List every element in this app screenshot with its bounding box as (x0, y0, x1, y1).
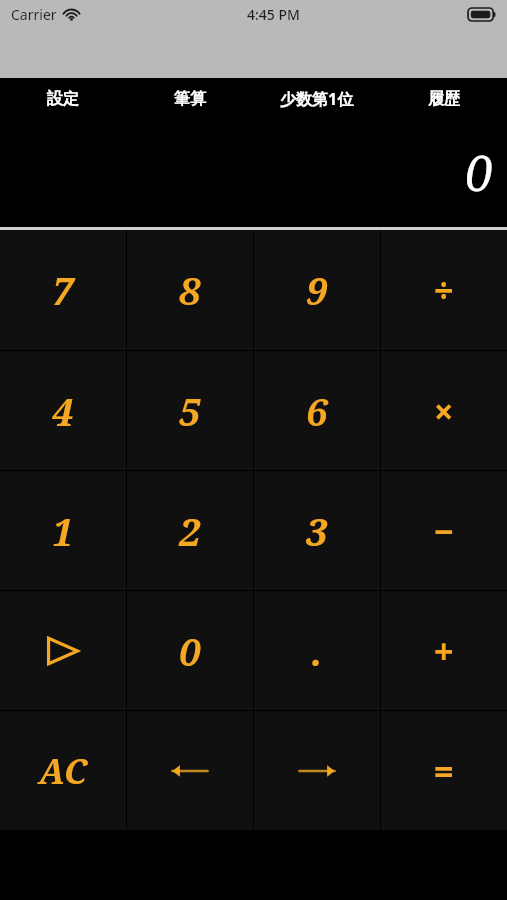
button[interactable]: Forward (254, 711, 380, 830)
staticText: + (434, 628, 454, 674)
button[interactable]: Backward (127, 711, 253, 830)
staticText: 少数第1位 (280, 88, 354, 110)
button[interactable]: + (381, 591, 507, 710)
button[interactable]: Play (0, 591, 126, 710)
staticText: 1 (52, 505, 74, 557)
staticText: 2 (179, 505, 201, 557)
staticText: × (434, 388, 454, 434)
button[interactable]: 筆算 (126, 78, 253, 120)
staticText: 0 (465, 138, 493, 206)
button[interactable]: AC (0, 711, 126, 830)
button[interactable]: 少数第1位 (253, 78, 380, 120)
button[interactable]: 5 (127, 351, 253, 470)
button[interactable]: 6 (254, 351, 380, 470)
button[interactable]: 7 (0, 230, 126, 350)
button[interactable]: × (381, 351, 507, 470)
staticText: = (434, 748, 454, 794)
button[interactable]: ÷ (381, 230, 507, 350)
button[interactable]: . (254, 591, 380, 710)
staticText: . (311, 625, 323, 677)
staticText: 7 (52, 264, 74, 316)
staticText: 設定 (47, 89, 79, 109)
staticText: AC (39, 748, 87, 794)
button[interactable]: 3 (254, 471, 380, 590)
button[interactable]: 8 (127, 230, 253, 350)
staticText: 8 (179, 264, 201, 316)
button[interactable]: 1 (0, 471, 126, 590)
staticText: 4 (52, 385, 74, 437)
staticText: − (434, 508, 454, 554)
button[interactable]: = (381, 711, 507, 830)
staticText: 5 (179, 385, 201, 437)
staticText: 3 (306, 505, 328, 557)
staticText: 筆算 (174, 89, 206, 109)
button[interactable]: 設定 (0, 78, 126, 120)
button[interactable]: 4 (0, 351, 126, 470)
staticText: ÷ (434, 267, 454, 313)
staticText: 4:45 PM (247, 5, 300, 24)
staticText: Carrier (11, 5, 57, 24)
button[interactable]: 0 (127, 591, 253, 710)
staticText: 6 (306, 385, 328, 437)
button[interactable]: 履歴 (380, 78, 507, 120)
staticText: 9 (306, 264, 328, 316)
staticText: 履歴 (428, 89, 460, 109)
button[interactable]: − (381, 471, 507, 590)
staticText: 0 (179, 625, 201, 677)
button[interactable]: 9 (254, 230, 380, 350)
button[interactable]: 2 (127, 471, 253, 590)
